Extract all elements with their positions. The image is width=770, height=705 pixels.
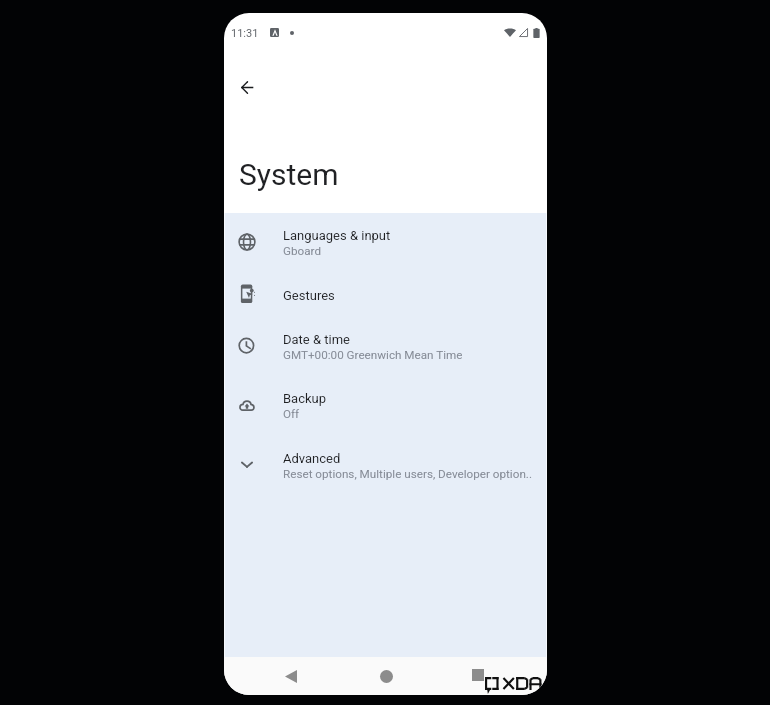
button[interactable] xyxy=(224,379,547,433)
button[interactable] xyxy=(224,437,547,491)
staticText: Languages & input xyxy=(283,228,391,243)
button[interactable] xyxy=(224,215,547,269)
button[interactable]: Back xyxy=(270,657,312,695)
button[interactable]: Back xyxy=(226,66,268,108)
button[interactable] xyxy=(224,319,547,373)
staticText: 11:31 xyxy=(231,27,259,40)
staticText: Date & time xyxy=(283,332,350,347)
staticText: Gboard xyxy=(283,244,321,258)
button[interactable] xyxy=(224,272,547,316)
button[interactable]: Home xyxy=(365,657,407,695)
staticText: Off xyxy=(283,407,300,421)
button[interactable]: Recent apps xyxy=(457,657,499,695)
staticText: GMT+00:00 Greenwich Mean Time xyxy=(283,348,463,362)
staticText: Backup xyxy=(283,391,327,406)
staticText: Advanced xyxy=(283,451,341,466)
staticText: System xyxy=(239,157,339,192)
staticText: Gestures xyxy=(283,288,335,303)
staticText: Reset options, Multiple users, Developer… xyxy=(283,467,532,481)
